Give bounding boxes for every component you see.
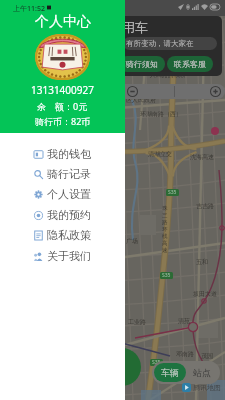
- staticText: 13131400927: [31, 83, 94, 97]
- staticText: 三: [162, 212, 168, 219]
- staticText: 腾讯地图: [193, 383, 221, 392]
- staticText: 清苑: [178, 317, 190, 325]
- button[interactable]: 关于我们: [0, 246, 125, 266]
- button[interactable]: 骑行记录: [0, 164, 125, 184]
- staticText: 路: [162, 219, 168, 226]
- button[interactable]: 隐私政策: [0, 225, 125, 245]
- staticText: 个人设置: [47, 187, 91, 201]
- staticText: S35: [162, 272, 171, 279]
- staticText: 联系客服: [174, 59, 206, 69]
- staticText: 人民路跨线桥: [150, 71, 186, 79]
- staticText: 环: [162, 226, 168, 233]
- staticText: 坂田大道: [193, 290, 217, 298]
- button[interactable]: 车辆: [154, 363, 186, 382]
- staticText: 吉吉路: [196, 202, 214, 210]
- staticText: 站点: [193, 367, 211, 378]
- button[interactable]: Zoom out: [127, 86, 138, 97]
- staticText: 工业路: [128, 318, 146, 326]
- staticText: 高: [162, 240, 168, 247]
- button[interactable]: Profile photo: [35, 34, 90, 80]
- staticText: 茂园: [201, 352, 213, 360]
- staticText: 清湖立交: [148, 150, 172, 158]
- staticText: 骑行记录: [47, 167, 91, 181]
- staticText: 广场: [126, 237, 138, 245]
- staticText: 我的钱包: [47, 147, 91, 161]
- staticText: 骑行币：82币: [35, 115, 91, 127]
- staticText: 环湖南路（西）: [140, 110, 182, 118]
- staticText: 个人中心: [35, 13, 91, 31]
- staticText: 邓南路: [176, 350, 194, 358]
- staticText: 车辆: [161, 367, 179, 378]
- staticText: 线: [162, 233, 168, 240]
- staticText: 沈海高速: [190, 153, 214, 161]
- button[interactable]: 个人设置: [0, 184, 125, 204]
- button[interactable]: 我的钱包: [0, 144, 125, 164]
- button[interactable]: 骑行须知: [119, 56, 165, 72]
- staticText: 上午11:52: [13, 4, 45, 14]
- staticText: S35: [152, 359, 161, 366]
- staticText: 用车: [122, 19, 148, 35]
- staticText: 关于我们: [47, 249, 91, 263]
- button[interactable]: 站点: [186, 363, 218, 382]
- button[interactable]: Zoom in: [210, 86, 221, 97]
- staticText: 余 额：0元: [37, 100, 88, 112]
- staticText: 有所变动，请大家在: [126, 39, 194, 48]
- staticText: 五和: [196, 258, 208, 266]
- staticText: 珠: [162, 205, 168, 212]
- staticText: 区人民政府: [126, 96, 156, 104]
- button[interactable]: 我的预约: [0, 205, 125, 225]
- staticText: 隐私政策: [47, 228, 91, 242]
- staticText: S35: [168, 189, 177, 196]
- button[interactable]: 联系客服: [167, 56, 213, 72]
- staticText: 骑行须知: [126, 59, 158, 69]
- staticText: 我的预约: [47, 208, 91, 222]
- staticText: 速: [162, 247, 168, 254]
